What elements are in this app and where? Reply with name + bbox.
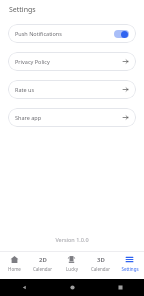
other: Home bbox=[10, 255, 19, 264]
staticText: Calendar bbox=[91, 266, 110, 272]
button[interactable]: Rate us bbox=[8, 80, 136, 99]
staticText: Settings bbox=[121, 266, 139, 272]
staticText: Version 1.0.0 bbox=[0, 236, 144, 243]
staticText: Settings bbox=[9, 5, 36, 15]
button[interactable]: Push Notifications bbox=[8, 24, 136, 43]
button[interactable]: Lucky bbox=[57, 252, 86, 279]
staticText: Push Notifications bbox=[15, 30, 114, 37]
button[interactable]: Settings bbox=[115, 252, 144, 279]
staticText: Calendar bbox=[33, 266, 52, 272]
button[interactable]: 2D bbox=[28, 252, 57, 279]
staticText: Share app bbox=[15, 114, 122, 121]
button[interactable]: Share app bbox=[8, 108, 136, 127]
button[interactable]: Push notifications toggle bbox=[114, 30, 129, 38]
staticText: Privacy Policy bbox=[15, 58, 122, 65]
other: Open bbox=[122, 86, 129, 93]
other: Lucky bbox=[67, 255, 76, 264]
button[interactable]: 3D bbox=[86, 252, 115, 279]
button[interactable]: Privacy Policy bbox=[8, 52, 136, 71]
other: Settings bbox=[125, 255, 134, 264]
staticText: Lucky bbox=[66, 266, 78, 272]
staticText: Rate us bbox=[15, 86, 122, 93]
staticText: Home bbox=[8, 266, 21, 272]
button[interactable]: Home bbox=[0, 252, 28, 279]
other: Open bbox=[122, 114, 129, 121]
staticText: 3D bbox=[97, 256, 105, 264]
staticText: 2D bbox=[39, 256, 47, 264]
other: Open bbox=[122, 58, 129, 65]
